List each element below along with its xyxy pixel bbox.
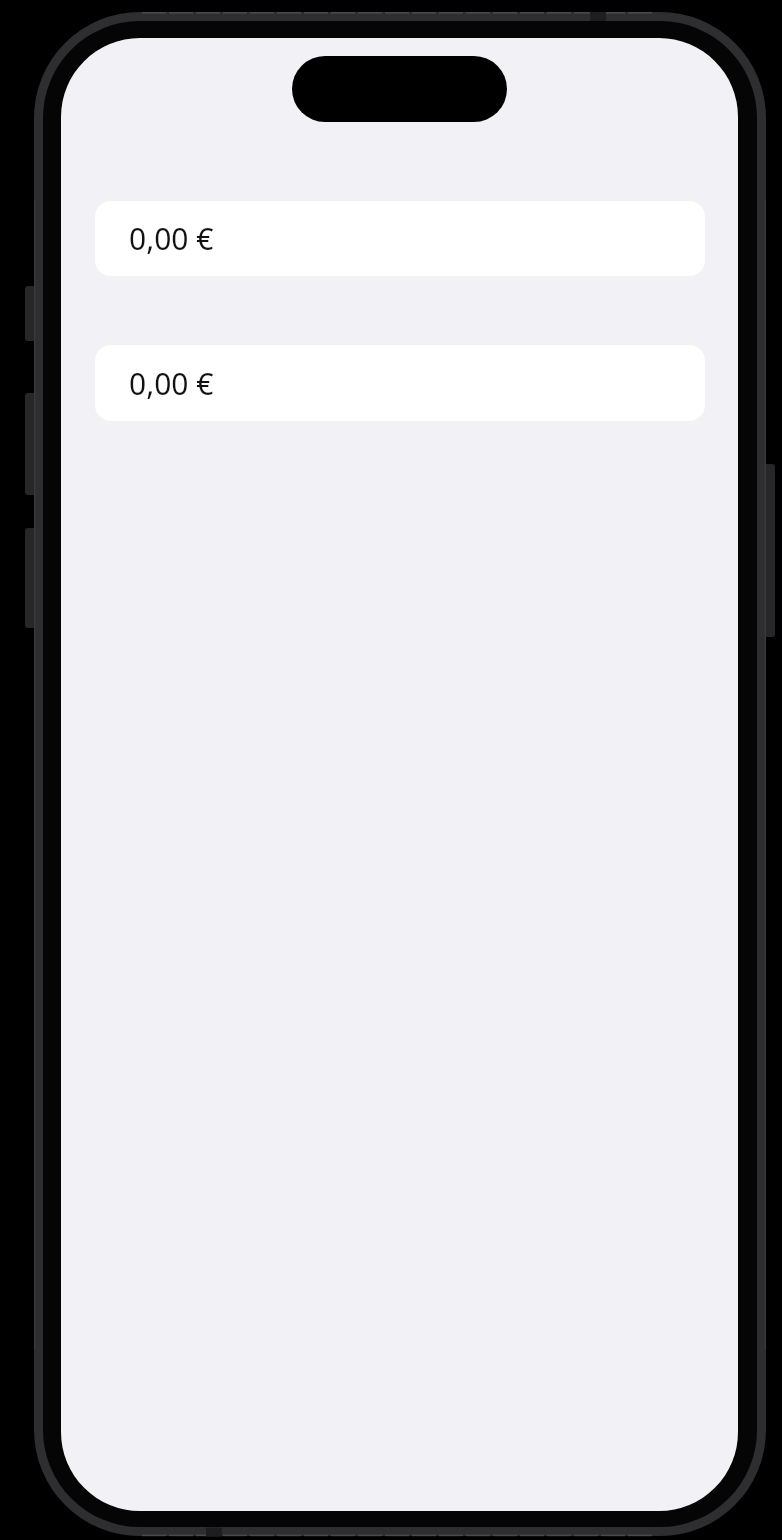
staticText: 0,00 € [129, 363, 214, 404]
staticText: 0,00 € [129, 218, 214, 259]
button[interactable]: 0,00 € [95, 345, 705, 421]
button[interactable]: 0,00 € [95, 201, 705, 276]
